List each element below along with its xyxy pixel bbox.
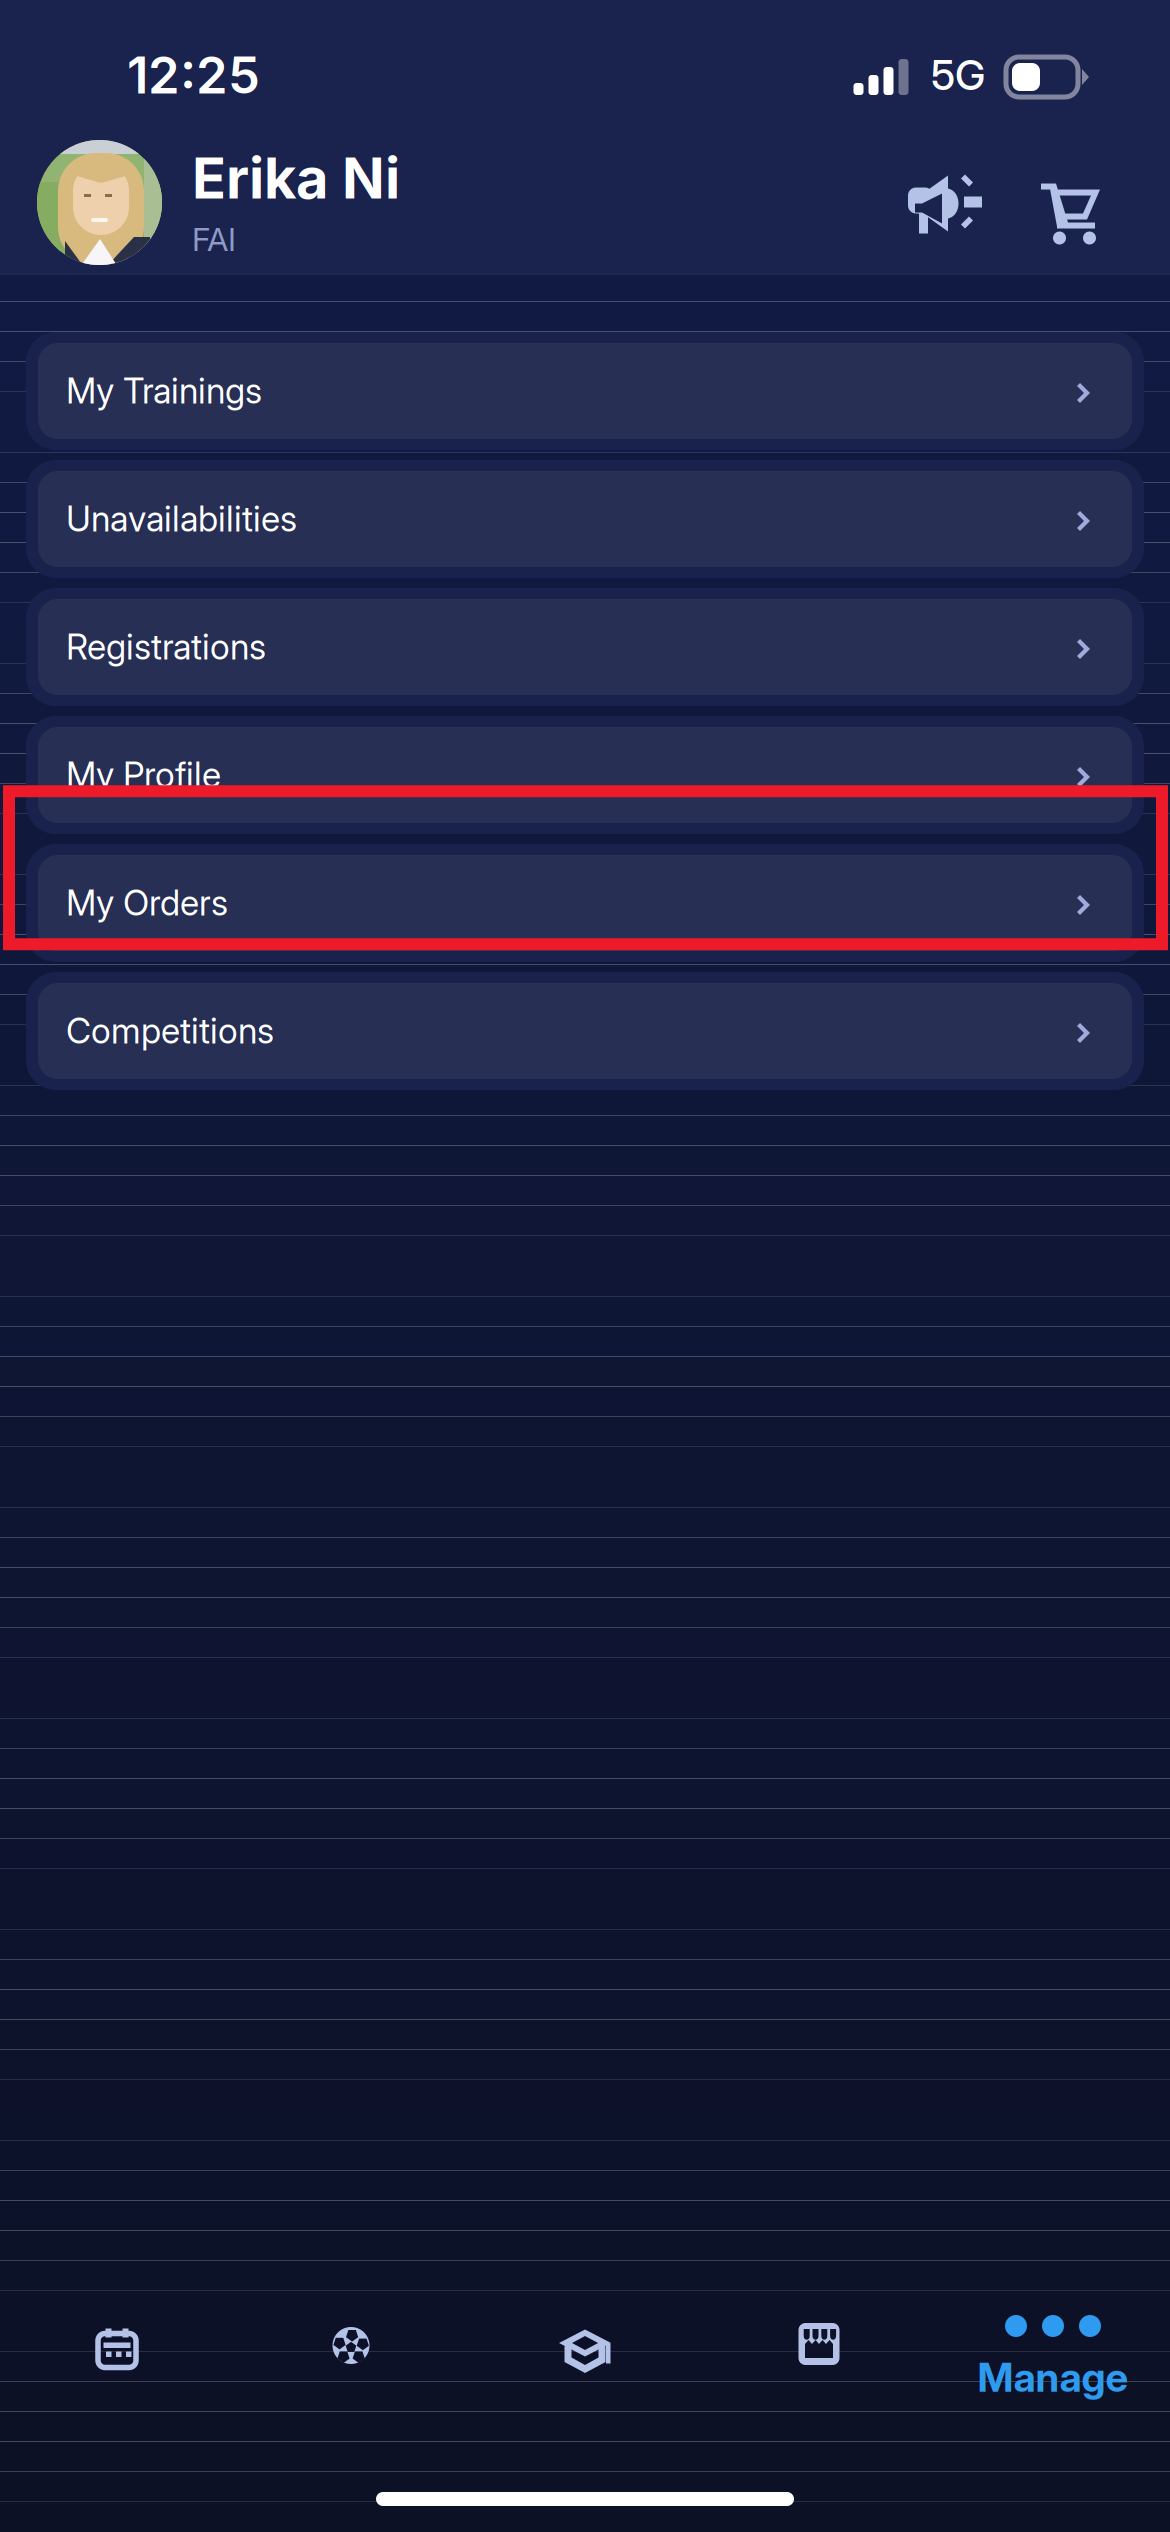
staticText: Unavailabilities (66, 498, 297, 540)
staticText: Manage (977, 2353, 1128, 2401)
button[interactable]: My Profile (26, 716, 1144, 834)
button[interactable]: Competitions (26, 972, 1144, 1090)
staticText: My Trainings (66, 370, 262, 412)
staticText: 5G (931, 50, 985, 100)
staticText: My Orders (66, 882, 228, 924)
button[interactable]: Matches (234, 2315, 468, 2418)
staticText: My Profile (66, 754, 221, 796)
button[interactable]: Calendar (0, 2315, 234, 2418)
staticText: Competitions (66, 1010, 274, 1052)
staticText: Registrations (66, 626, 266, 668)
button[interactable]: Shop (702, 2315, 936, 2418)
button[interactable]: Education (468, 2315, 702, 2418)
staticText: Erika Ni (192, 144, 400, 212)
button[interactable]: My Orders (26, 844, 1144, 962)
button[interactable]: Registrations (26, 588, 1144, 706)
button[interactable]: Manage (936, 2315, 1170, 2418)
staticText: FAI (192, 220, 236, 259)
button[interactable]: My Trainings (26, 332, 1144, 450)
button[interactable]: Unavailabilities (26, 460, 1144, 578)
button[interactable]: Announcements (891, 147, 1026, 257)
button[interactable]: Cart (1026, 147, 1115, 257)
staticText: 12:25 (127, 44, 260, 106)
